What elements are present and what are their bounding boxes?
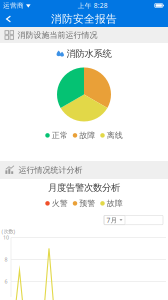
staticText: 10: [3, 234, 9, 241]
staticText: 故障: [79, 130, 95, 140]
button[interactable]: 返回: [0, 11, 19, 27]
staticText: 正常: [52, 130, 68, 140]
staticText: 预警: [79, 198, 95, 208]
staticText: 运营商: [3, 1, 24, 10]
staticText: 火警: [52, 198, 68, 208]
staticText: 消防水系统: [66, 48, 111, 59]
staticText: 7月: [106, 216, 117, 224]
staticText: 离线: [107, 130, 123, 140]
staticText: 月度告警次数分析: [48, 182, 120, 193]
staticText: 上午 8:28: [78, 1, 108, 10]
staticText: (次数): [1, 228, 15, 235]
staticText: 运行情况统计分析: [18, 165, 82, 175]
staticText: 故障: [107, 198, 123, 208]
staticText: 消防安全报告: [51, 12, 117, 25]
staticText: 6: [4, 278, 7, 285]
staticText: 8: [4, 256, 7, 263]
button[interactable]: 7月: [104, 215, 163, 225]
staticText: 消防设施当前运行情况: [18, 30, 98, 40]
